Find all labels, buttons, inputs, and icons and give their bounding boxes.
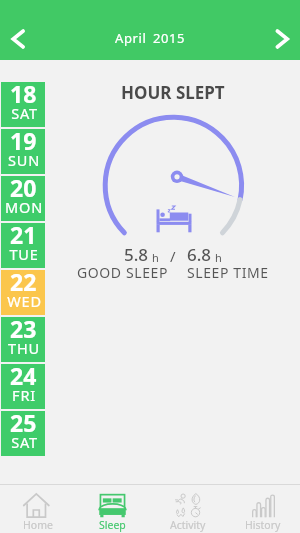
staticText: SAT (11, 103, 38, 123)
staticText: / (170, 246, 176, 266)
button[interactable]: 18 (1, 82, 45, 127)
staticText: THU (8, 338, 40, 358)
staticText: h (215, 250, 222, 265)
staticText: 23 (10, 313, 37, 344)
staticText: SAT (11, 432, 38, 452)
button[interactable]: 21 (1, 223, 45, 268)
staticText: 2015 (153, 29, 186, 47)
staticText: MON (5, 197, 43, 217)
staticText: SLEEP TIME (187, 263, 269, 282)
staticText: FRI (12, 385, 36, 405)
staticText: TUE (9, 244, 39, 264)
button[interactable]: Previous month (0, 18, 42, 60)
button[interactable]: Next month (258, 18, 300, 60)
button[interactable]: History (225, 485, 300, 533)
staticText: Sleep (99, 518, 126, 532)
staticText: April (115, 29, 147, 47)
button[interactable]: Sleep (75, 485, 150, 533)
staticText: 24 (10, 360, 37, 391)
staticText: 25 (10, 407, 37, 438)
staticText: 21 (10, 219, 37, 250)
staticText: History (245, 518, 281, 532)
staticText: 5.8 (124, 243, 149, 266)
button[interactable]: 20 (1, 176, 45, 221)
staticText: 19 (10, 125, 37, 156)
button[interactable]: 22 (1, 270, 45, 315)
staticText: SUN (8, 150, 40, 170)
staticText: GOOD SLEEP (77, 263, 168, 282)
staticText: 6.8 (187, 243, 212, 266)
staticText: Activity (170, 518, 206, 532)
button[interactable]: Home (0, 485, 75, 533)
staticText: 22 (10, 266, 37, 297)
button[interactable]: 25 (1, 411, 45, 456)
staticText: WED (7, 291, 42, 311)
button[interactable]: 19 (1, 129, 45, 174)
staticText: HOUR SLEPT (121, 81, 225, 104)
staticText: Home (23, 518, 53, 532)
button[interactable]: Activity (150, 485, 225, 533)
button[interactable]: 23 (1, 317, 45, 362)
button[interactable]: 24 (1, 364, 45, 409)
staticText: 20 (10, 172, 37, 203)
staticText: 18 (10, 78, 37, 109)
staticText: h (152, 250, 159, 265)
